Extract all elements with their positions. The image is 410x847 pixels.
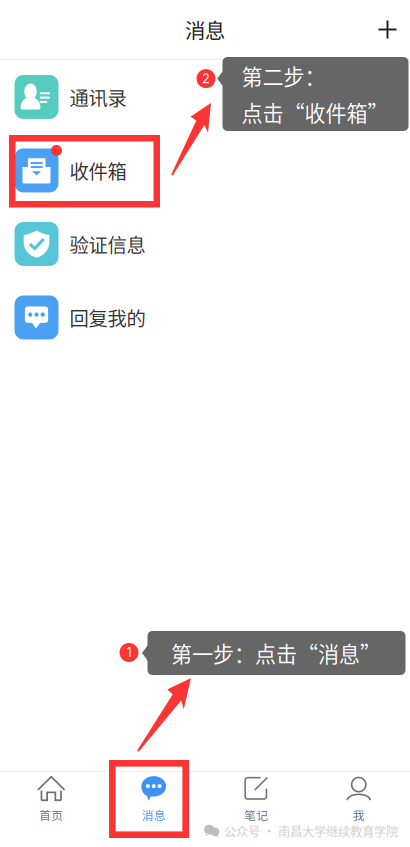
staticText: 2 <box>202 71 210 86</box>
staticText: 通讯录 <box>69 83 126 111</box>
staticText: 笔记 <box>244 806 268 823</box>
staticText: 首页 <box>39 806 63 823</box>
button[interactable]: 笔记 <box>205 772 307 827</box>
staticText: 第二步： <box>241 60 325 91</box>
staticText: 收件箱 <box>69 156 126 184</box>
staticText: 回复我的 <box>69 303 145 331</box>
staticText: 公众号 · 南昌大学继续教育学院 <box>224 822 398 840</box>
button[interactable]: 我 <box>307 772 410 827</box>
button[interactable]: 消息 <box>102 772 205 827</box>
button[interactable]: 收件箱 <box>0 134 410 207</box>
staticText: 我 <box>353 806 365 823</box>
button[interactable]: 通讯录 <box>0 60 410 134</box>
staticText: 第一步：点击“消息” <box>171 638 381 668</box>
button[interactable]: 首页 <box>0 772 102 827</box>
staticText: 1 <box>126 645 131 660</box>
staticText: 验证信息 <box>69 230 145 258</box>
button[interactable]: 验证信息 <box>0 207 410 281</box>
staticText: 点击“收件箱” <box>241 97 388 127</box>
button[interactable]: New message <box>370 12 405 47</box>
button[interactable]: 回复我的 <box>0 281 410 354</box>
staticText: 消息 <box>142 806 166 823</box>
staticText: 消息 <box>185 15 225 44</box>
